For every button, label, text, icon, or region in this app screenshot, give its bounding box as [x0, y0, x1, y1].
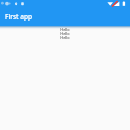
button[interactable]: Hello [60, 31, 70, 35]
staticText: Hello [60, 31, 70, 35]
staticText: Hello [60, 35, 70, 39]
staticText: Hello [60, 27, 70, 31]
button[interactable]: Hello [60, 35, 70, 39]
staticText: First app [5, 12, 33, 21]
button[interactable]: Hello [60, 27, 70, 31]
